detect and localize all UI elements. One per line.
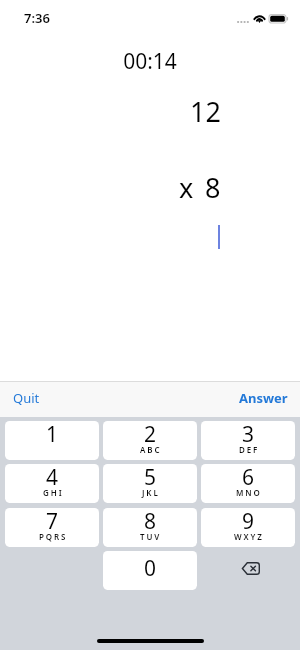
staticText: 4 [46,464,59,492]
staticText: 7 [46,508,59,536]
staticText: DEF [239,444,260,455]
staticText: 8 [205,169,221,206]
button[interactable]: 7 [5,508,99,547]
staticText: PQRS [39,531,68,542]
staticText: 8 [144,508,157,536]
staticText: 12 [190,93,221,130]
staticText: 2 [144,421,157,449]
button[interactable]: Delete [201,551,295,590]
staticText: JKL [142,487,160,498]
staticText: Quit [13,389,40,407]
button[interactable]: 1 [5,421,99,460]
staticText: 0 [144,554,157,583]
staticText: 7:36 [24,9,50,27]
staticText: WXYZ [234,531,264,542]
staticText: x [179,169,194,206]
button[interactable]: 4 [5,464,99,503]
button[interactable]: Answer [226,382,300,414]
staticText: 9 [242,508,255,536]
staticText: GHI [43,487,64,498]
button[interactable]: 9 [201,508,295,547]
button[interactable]: 8 [103,508,197,547]
button[interactable]: 5 [103,464,197,503]
staticText: 00:14 [0,47,300,76]
button[interactable]: 3 [201,421,295,460]
button[interactable]: 0 [103,551,197,590]
button[interactable]: 2 [103,421,197,460]
staticText: 3 [242,421,255,449]
staticText: 6 [242,464,255,492]
button[interactable]: 6 [201,464,295,503]
staticText: MNO [236,487,262,498]
staticText: TUV [140,531,162,542]
staticText: 1 [46,421,59,449]
staticText: 5 [144,464,157,492]
button[interactable]: Quit [0,382,53,414]
staticText: ABC [140,444,162,455]
staticText: Answer [239,389,288,407]
